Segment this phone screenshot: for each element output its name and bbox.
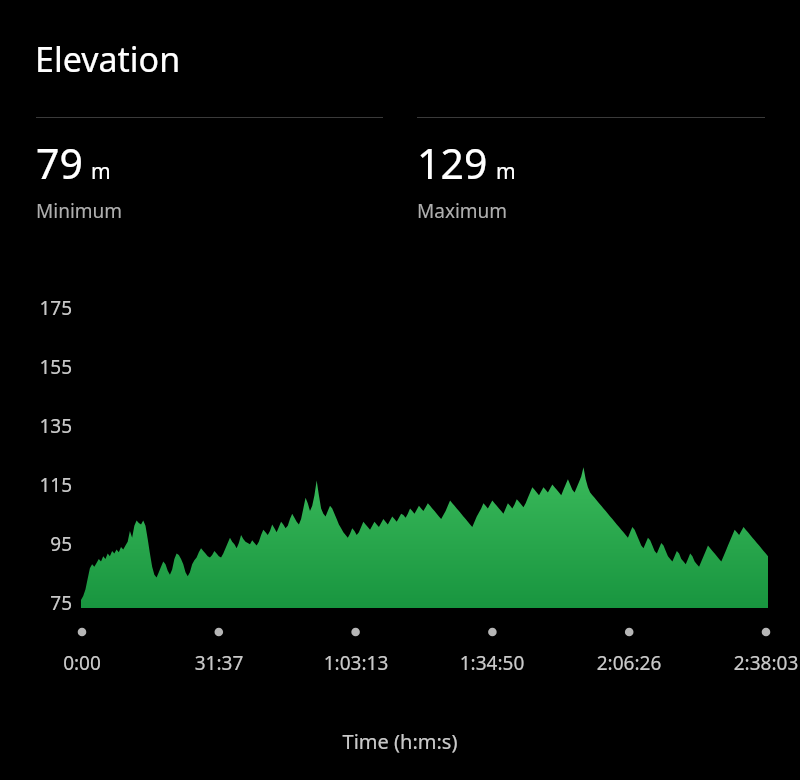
staticText: 0:00: [20, 650, 144, 676]
staticText: 2:38:03: [704, 650, 800, 676]
staticText: 95: [0, 531, 72, 557]
staticText: 79: [36, 135, 83, 191]
staticText: m: [91, 157, 111, 186]
staticText: 2:06:26: [567, 650, 691, 676]
button[interactable]: 79: [36, 117, 383, 224]
staticText: 31:37: [157, 650, 281, 676]
button[interactable]: 129: [417, 117, 765, 224]
staticText: 135: [0, 413, 72, 439]
staticText: 115: [0, 472, 72, 498]
staticText: 1:34:50: [430, 650, 554, 676]
staticText: Elevation: [35, 36, 181, 82]
staticText: 175: [0, 295, 72, 321]
staticText: Maximum: [417, 198, 508, 224]
staticText: 129: [417, 135, 488, 191]
staticText: 1:03:13: [294, 650, 418, 676]
button[interactable]: Elevation over time chart: [0, 0, 800, 780]
staticText: 75: [0, 590, 72, 616]
staticText: Time (h:m:s): [0, 728, 800, 755]
staticText: m: [496, 157, 516, 186]
staticText: 155: [0, 354, 72, 380]
staticText: Minimum: [36, 198, 123, 224]
